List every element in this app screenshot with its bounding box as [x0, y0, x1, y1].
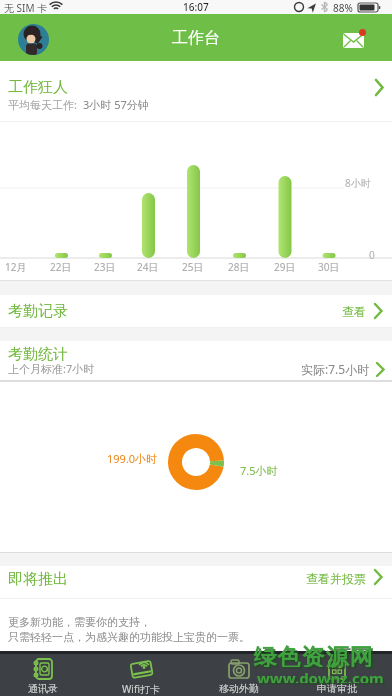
button[interactable]: 申请审批 — [288, 651, 386, 696]
staticText: www.downz.com — [259, 670, 386, 685]
staticText: 30日 — [318, 260, 340, 273]
staticText: Wifi打卡 — [122, 682, 160, 696]
staticText: 只需轻轻一点，为感兴趣的功能投上宝贵的一票。 — [8, 630, 250, 644]
staticText: 移动外勤 — [219, 682, 259, 695]
button[interactable]: Wifi打卡 — [92, 651, 190, 696]
staticText: 即将推出 — [8, 570, 68, 586]
button[interactable] — [0, 295, 392, 327]
staticText: 199.0小时 — [107, 451, 158, 464]
staticText: 29日 — [274, 260, 296, 273]
staticText: 工作狂人 — [8, 78, 68, 94]
staticText: 24日 — [137, 260, 159, 273]
button[interactable] — [0, 566, 392, 598]
staticText: 3小时 57分钟 — [83, 97, 149, 111]
staticText: 8小时 — [345, 176, 371, 188]
button[interactable] — [18, 24, 49, 55]
staticText: www.downz.com — [257, 668, 384, 683]
staticText: 22日 — [50, 260, 72, 273]
staticText: 考勤统计 — [8, 345, 68, 361]
staticText: 实际:7.5小时 — [301, 361, 370, 376]
staticText: 0 — [369, 248, 375, 260]
staticText: 绿色资源网 — [253, 643, 373, 667]
staticText: 申请审批 — [317, 682, 357, 695]
staticText: 考勤记录 — [8, 302, 68, 318]
staticText: 查看并投票 — [306, 571, 366, 585]
staticText: 28日 — [228, 260, 250, 273]
staticText: 工作台 — [172, 28, 220, 48]
staticText: 25日 — [182, 260, 204, 273]
staticText: 上个月标准:7小时 — [8, 361, 95, 375]
staticText: 查看 — [342, 304, 366, 318]
staticText: 更多新功能，需要你的支持， — [8, 615, 151, 629]
staticText: 88% — [333, 1, 353, 13]
staticText: 通讯录 — [28, 682, 58, 695]
button[interactable] — [0, 75, 392, 121]
button[interactable]: 移动外勤 — [190, 651, 288, 696]
staticText: 无 SIM 卡 — [4, 1, 48, 13]
staticText: 16:07 — [183, 0, 209, 14]
staticText: 23日 — [94, 260, 116, 273]
staticText: 绿色资源网 — [255, 645, 375, 669]
staticText: 平均每天工作: — [8, 97, 80, 111]
button[interactable] — [338, 28, 370, 52]
staticText: 12月 — [5, 260, 27, 273]
staticText: 7.5小时 — [240, 463, 278, 476]
button[interactable]: 通讯录 — [0, 651, 92, 696]
button[interactable] — [0, 341, 392, 381]
